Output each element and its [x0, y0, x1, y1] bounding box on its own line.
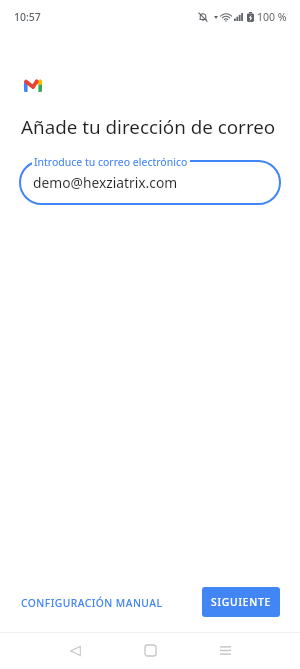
- staticText: SIGUIENTE: [211, 595, 272, 609]
- staticText: CONFIGURACIÓN MANUAL: [21, 596, 163, 610]
- button[interactable]: Back: [53, 632, 97, 669]
- staticText: Añade tu dirección de correo: [21, 114, 276, 140]
- staticText: demo@hexziatrix.com: [33, 173, 178, 192]
- button[interactable]: Recent apps: [203, 632, 247, 669]
- staticText: Introduce tu correo electrónico: [34, 155, 188, 169]
- staticText: 100 %: [257, 10, 287, 24]
- button[interactable]: SIGUIENTE: [202, 587, 280, 617]
- button[interactable]: CONFIGURACIÓN MANUAL: [15, 590, 169, 616]
- button[interactable]: Home: [128, 632, 172, 669]
- staticText: 10:57: [14, 10, 41, 24]
